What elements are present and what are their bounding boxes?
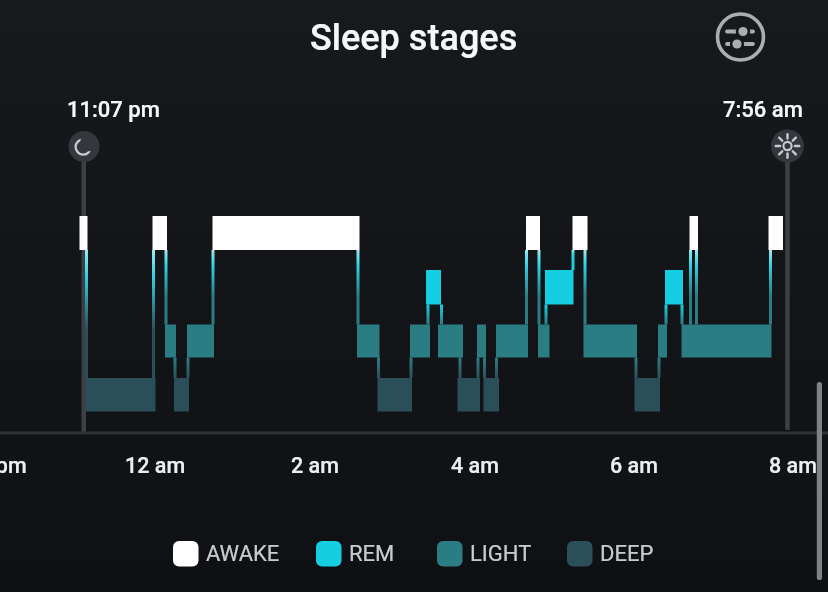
staticText: 2 am [291, 453, 339, 478]
staticText: LIGHT [470, 541, 532, 567]
staticText: DEEP [600, 541, 654, 567]
button[interactable] [712, 9, 769, 66]
staticText: 10 pm [0, 453, 27, 478]
staticText: 11:07 pm [67, 97, 160, 123]
staticText: REM [349, 541, 395, 567]
staticText: 8 am [769, 453, 817, 478]
staticText: 7:56 am [723, 97, 803, 123]
staticText: AWAKE [206, 541, 280, 567]
staticText: 4 am [451, 453, 499, 478]
staticText: 6 am [610, 453, 658, 478]
staticText: 12 am [125, 453, 186, 478]
staticText: Sleep stages [310, 17, 518, 59]
